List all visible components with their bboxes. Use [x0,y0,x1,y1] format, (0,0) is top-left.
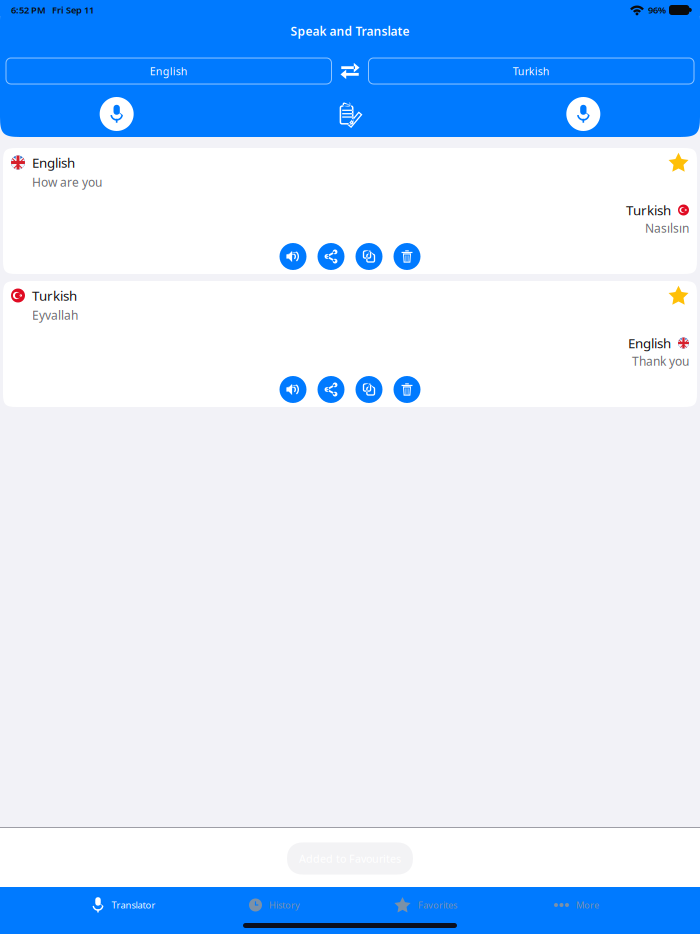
button[interactable]: Translator [48,887,199,923]
staticText: Translator [111,899,155,911]
staticText: Nasılsın [645,220,689,236]
staticText: Turkish [626,201,671,219]
staticText: Speak and Translate [290,23,409,39]
button[interactable]: Speak [279,376,306,403]
button[interactable]: Type text [338,102,361,126]
button[interactable]: Delete [393,243,420,270]
button[interactable]: Speak [279,243,306,270]
button[interactable]: History [199,887,350,923]
button[interactable]: Delete [393,376,420,403]
staticText: English [628,334,671,352]
button[interactable]: Copy [355,376,382,403]
staticText: English [32,154,75,171]
staticText: How are you [32,174,102,190]
staticText: 96% [648,4,666,16]
button[interactable]: Share [317,376,344,403]
staticText: Turkish [32,287,77,304]
staticText: Thank you [632,353,689,369]
staticText: History [269,899,300,911]
button[interactable]: Share [317,243,344,270]
staticText: Eyvallah [32,307,78,323]
staticText: Added to Favourites [299,851,401,866]
button[interactable]: Turkish [368,58,694,84]
staticText: Favorites [418,899,457,911]
button[interactable]: Favorites [350,887,501,923]
button[interactable]: Record Turkish [566,97,600,131]
button[interactable]: Copy [355,243,382,270]
button[interactable]: Favourite [668,152,689,173]
button[interactable]: English [6,58,331,84]
staticText: More [576,899,599,911]
button[interactable]: Favourite [668,285,689,306]
button[interactable]: Record English [100,97,134,131]
staticText: Turkish [513,64,550,78]
button[interactable]: More [501,887,652,923]
staticText: 6:52 PM Fri Sep 11 [11,4,94,16]
staticText: English [150,64,188,78]
